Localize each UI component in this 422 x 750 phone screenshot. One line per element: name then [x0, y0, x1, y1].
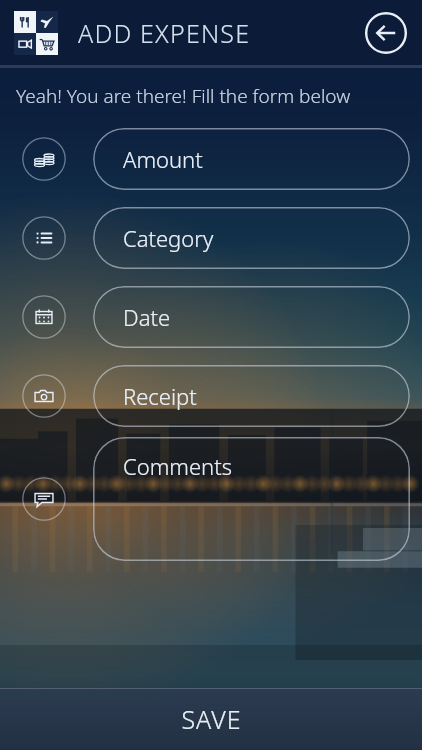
button[interactable]: Back — [364, 11, 408, 55]
button[interactable]: Amount — [93, 128, 410, 190]
staticText: Comments — [123, 451, 232, 481]
button[interactable]: App icon — [14, 11, 58, 55]
button[interactable]: Category — [93, 207, 410, 269]
button[interactable]: Date — [21, 294, 67, 340]
staticText: Yeah! You are there! Fill the form below — [16, 83, 351, 109]
button[interactable]: Amount — [21, 136, 67, 182]
button[interactable]: Receipt — [93, 365, 410, 427]
button[interactable]: Category — [21, 215, 67, 261]
button[interactable]: Comments — [93, 437, 410, 561]
button[interactable]: Comments — [21, 476, 67, 522]
staticText: SAVE — [181, 702, 242, 736]
staticText: Date — [123, 302, 171, 332]
button[interactable]: Receipt — [21, 373, 67, 419]
staticText: Receipt — [123, 381, 197, 411]
staticText: Category — [123, 223, 214, 253]
staticText: Amount — [123, 144, 203, 174]
staticText: ADD EXPENSE — [78, 16, 251, 50]
button[interactable]: SAVE — [0, 688, 422, 750]
button[interactable]: Date — [93, 286, 410, 348]
